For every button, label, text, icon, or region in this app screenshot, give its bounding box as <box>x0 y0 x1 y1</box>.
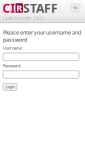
button[interactable]: Login <box>3 83 17 90</box>
staticText: Please enter your username and password <box>3 29 81 43</box>
staticText: CI <box>2 0 15 16</box>
staticText: CAMPERDOWN STAFF <box>2 17 43 20</box>
staticText: Login <box>5 84 14 89</box>
staticText: R <box>16 2 22 14</box>
staticText: Username <box>3 45 22 50</box>
button[interactable]: Menu <box>71 4 80 11</box>
staticText: Password <box>3 63 20 68</box>
staticText: STAFF <box>23 0 58 16</box>
